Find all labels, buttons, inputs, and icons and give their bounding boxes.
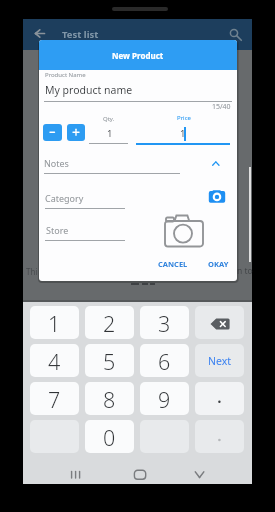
button[interactable] (67, 124, 85, 141)
staticText: Category (45, 192, 84, 204)
button[interactable]: 1 (30, 306, 79, 339)
button[interactable]: 8 (85, 382, 134, 415)
staticText: 6 (158, 347, 171, 376)
button[interactable] (208, 157, 224, 171)
staticText: Price (177, 114, 191, 122)
staticText: 4 (48, 347, 61, 376)
button[interactable]: OKAY (158, 254, 237, 274)
button[interactable] (225, 24, 245, 42)
staticText: New Product (112, 50, 164, 61)
staticText: Notes (44, 157, 69, 169)
staticText: Next (208, 354, 232, 368)
button[interactable]: 3 (140, 306, 189, 339)
button[interactable]: 4 (30, 344, 79, 377)
button[interactable]: 5 (85, 344, 134, 377)
staticText: 2 (103, 309, 116, 338)
button[interactable] (65, 464, 85, 484)
staticText: 7 (48, 385, 61, 414)
staticText: 15/40 (212, 102, 231, 112)
button[interactable] (163, 213, 207, 249)
staticText: OKAY (208, 259, 229, 269)
button[interactable]: 2 (85, 306, 134, 339)
button[interactable]: 0 (85, 420, 134, 453)
staticText: My product name (45, 83, 133, 97)
button[interactable] (207, 187, 227, 205)
button[interactable]: CANCEL (113, 254, 233, 274)
staticText: Thi (26, 266, 38, 277)
staticText: CANCEL (158, 259, 188, 269)
staticText: 1 (107, 127, 113, 140)
staticText: 5 (103, 347, 116, 376)
staticText: Qty. (103, 115, 115, 123)
staticText: 1 (180, 127, 186, 140)
button[interactable] (195, 306, 244, 339)
button[interactable]: Next (195, 344, 244, 377)
staticText: Product Name (45, 71, 86, 79)
staticText: Test list (62, 28, 99, 41)
button[interactable] (190, 464, 210, 484)
button[interactable] (130, 464, 150, 484)
button[interactable]: 7 (30, 382, 79, 415)
button[interactable] (29, 25, 49, 43)
staticText: 8 (103, 385, 116, 414)
staticText: Store (46, 224, 69, 236)
staticText: 1 (48, 309, 61, 338)
staticText: 0 (103, 423, 116, 452)
staticText: 3 (158, 309, 171, 338)
button[interactable] (195, 382, 244, 415)
button[interactable]: 6 (140, 344, 189, 377)
staticText: n to (237, 265, 253, 277)
staticText: 9 (158, 385, 171, 414)
button[interactable]: 9 (140, 382, 189, 415)
button[interactable] (43, 124, 62, 141)
